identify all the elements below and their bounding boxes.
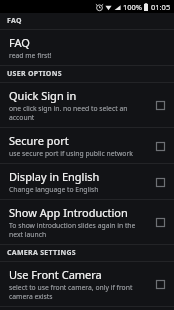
staticText: Change language to English: [9, 185, 99, 194]
staticText: use secure port if using public network: [9, 149, 133, 158]
button[interactable]: FAQ: [0, 30, 174, 66]
staticText: Display in English: [9, 169, 100, 184]
staticText: one click sign in. no need to select an …: [9, 104, 145, 122]
staticText: USER OPTIONS: [7, 69, 62, 79]
other: Toggle checkbox: [156, 218, 165, 227]
staticText: CAMERA SETTINGS: [7, 248, 76, 258]
staticText: select to use front camera, only if fron…: [9, 283, 145, 301]
staticText: Show App Introduction: [9, 205, 128, 220]
button[interactable]: Use Front Camera: [0, 262, 174, 307]
staticText: 100%: [123, 2, 143, 12]
staticText: Quick Sign in: [9, 88, 77, 103]
button[interactable]: Show App Introduction: [0, 200, 174, 245]
other: Toggle checkbox: [156, 280, 165, 289]
staticText: 01:05: [151, 2, 171, 12]
other: Toggle checkbox: [156, 142, 165, 151]
staticText: FAQ: [9, 35, 30, 50]
button[interactable]: Quick Sign in: [0, 83, 174, 128]
staticText: To show introduction slides again in the…: [9, 221, 145, 239]
other: Toggle checkbox: [156, 178, 165, 187]
other: Toggle checkbox: [156, 101, 165, 110]
button[interactable]: Secure port: [0, 128, 174, 164]
staticText: read me first!: [9, 51, 52, 60]
staticText: Use Front Camera: [9, 267, 102, 282]
staticText: FAQ: [7, 16, 22, 26]
staticText: Secure port: [9, 133, 69, 148]
button[interactable]: Display in English: [0, 164, 174, 200]
